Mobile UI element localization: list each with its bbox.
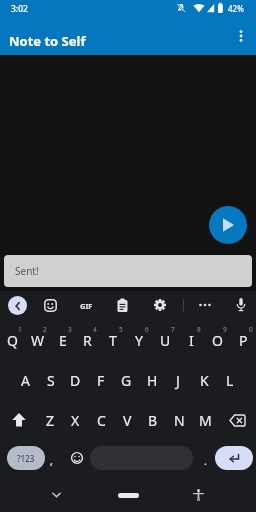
staticText: P bbox=[239, 331, 248, 350]
button[interactable]: P bbox=[230, 320, 256, 360]
staticText: 6 bbox=[145, 325, 149, 334]
button[interactable]: S bbox=[38, 360, 63, 400]
button[interactable]: F bbox=[88, 360, 113, 400]
staticText: 8 bbox=[197, 325, 201, 334]
button[interactable]: Y bbox=[126, 320, 152, 360]
staticText: 5 bbox=[119, 325, 123, 334]
staticText: K bbox=[200, 371, 209, 390]
button[interactable]: Q bbox=[0, 320, 25, 360]
button[interactable] bbox=[64, 446, 90, 470]
button[interactable]: D bbox=[63, 360, 88, 400]
staticText: 3 bbox=[68, 325, 72, 334]
button[interactable] bbox=[197, 297, 213, 313]
button[interactable] bbox=[215, 446, 253, 470]
staticText: H bbox=[147, 371, 158, 390]
button[interactable]: U bbox=[152, 320, 178, 360]
button[interactable]: C bbox=[88, 400, 114, 440]
button[interactable] bbox=[49, 488, 63, 502]
button[interactable]: V bbox=[114, 400, 140, 440]
button[interactable]: T bbox=[100, 320, 126, 360]
staticText: U bbox=[160, 331, 171, 350]
button[interactable]: A bbox=[13, 360, 38, 400]
staticText: Z bbox=[46, 411, 55, 430]
button[interactable] bbox=[153, 298, 167, 312]
staticText: D bbox=[70, 371, 81, 390]
staticText: O bbox=[212, 331, 223, 350]
staticText: W bbox=[31, 331, 45, 350]
button[interactable]: J bbox=[165, 360, 191, 400]
staticText: L bbox=[226, 371, 234, 390]
button[interactable]: K bbox=[191, 360, 217, 400]
button[interactable]: I bbox=[178, 320, 204, 360]
button[interactable] bbox=[192, 488, 205, 503]
button[interactable]: L bbox=[217, 360, 243, 400]
staticText: G bbox=[121, 371, 132, 390]
staticText: I bbox=[189, 331, 194, 350]
button[interactable]: R bbox=[75, 320, 100, 360]
button[interactable] bbox=[90, 446, 193, 470]
button[interactable]: GIF bbox=[75, 298, 97, 313]
staticText: 0 bbox=[249, 325, 253, 334]
button[interactable] bbox=[0, 400, 38, 440]
button[interactable] bbox=[209, 206, 247, 244]
staticText: S bbox=[47, 371, 55, 390]
staticText: B bbox=[148, 411, 158, 430]
staticText: T bbox=[109, 331, 117, 350]
staticText: N bbox=[174, 411, 185, 430]
button[interactable]: ?123 bbox=[7, 446, 45, 470]
button[interactable] bbox=[44, 299, 57, 312]
staticText: 4 bbox=[93, 325, 97, 334]
staticText: 3:02 bbox=[11, 3, 28, 15]
staticText: R bbox=[83, 331, 92, 350]
button[interactable] bbox=[8, 296, 27, 315]
staticText: F bbox=[97, 371, 105, 390]
button[interactable] bbox=[218, 400, 256, 440]
staticText: ?123 bbox=[17, 453, 35, 464]
button[interactable]: W bbox=[25, 320, 50, 360]
staticText: GIF bbox=[80, 301, 93, 311]
button[interactable]: M bbox=[192, 400, 218, 440]
staticText: Q bbox=[7, 331, 18, 350]
staticText: , bbox=[50, 453, 53, 468]
button[interactable] bbox=[232, 27, 250, 45]
staticText: 2 bbox=[43, 325, 47, 334]
button[interactable]: X bbox=[63, 400, 88, 440]
staticText: M bbox=[199, 411, 212, 430]
button[interactable]: O bbox=[204, 320, 230, 360]
button[interactable] bbox=[235, 297, 247, 313]
staticText: 7 bbox=[171, 325, 175, 334]
staticText: 1 bbox=[18, 325, 22, 334]
button[interactable]: Z bbox=[38, 400, 63, 440]
button[interactable]: N bbox=[166, 400, 192, 440]
staticText: C bbox=[97, 411, 106, 430]
staticText: V bbox=[123, 411, 132, 430]
staticText: E bbox=[59, 331, 67, 350]
staticText: A bbox=[21, 371, 30, 390]
button[interactable]: Sent! bbox=[4, 255, 252, 287]
button[interactable]: H bbox=[139, 360, 165, 400]
button[interactable]: . bbox=[192, 448, 218, 472]
button[interactable]: G bbox=[113, 360, 139, 400]
staticText: J bbox=[176, 371, 180, 390]
staticText: Y bbox=[135, 331, 143, 350]
staticText: X bbox=[71, 411, 80, 430]
staticText: Note to Self bbox=[9, 32, 86, 50]
button[interactable] bbox=[118, 493, 139, 498]
staticText: 9 bbox=[223, 325, 227, 334]
button[interactable]: , bbox=[38, 448, 64, 472]
staticText: Sent! bbox=[15, 264, 39, 278]
staticText: . bbox=[204, 453, 207, 468]
button[interactable]: E bbox=[50, 320, 75, 360]
button[interactable]: B bbox=[140, 400, 166, 440]
button[interactable] bbox=[116, 298, 129, 313]
staticText: 42% bbox=[228, 3, 244, 14]
